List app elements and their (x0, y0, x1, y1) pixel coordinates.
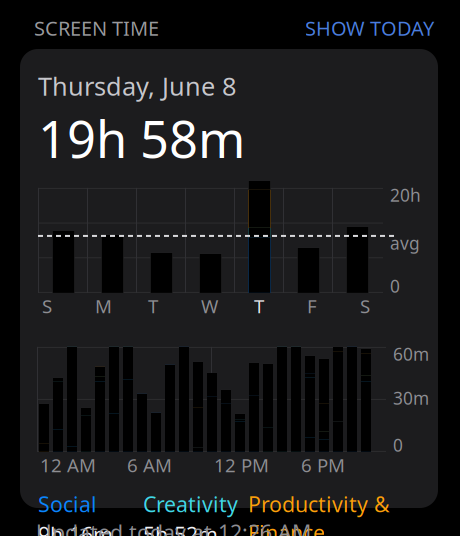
staticText: Social (38, 490, 97, 518)
button[interactable]: SHOW TODAY (305, 15, 434, 41)
staticText: 60m (393, 342, 429, 365)
staticText: S (42, 293, 52, 318)
staticText: Thursday, June 8 (38, 69, 236, 103)
staticText: F (307, 293, 317, 318)
staticText: Creativity (143, 490, 238, 518)
staticText: Productivity & Finance (248, 490, 390, 536)
staticText: S (360, 293, 370, 318)
staticText: T (148, 293, 158, 318)
staticText: 6 PM (301, 452, 345, 477)
staticText: Updated today at 12:26 AM (36, 518, 311, 536)
staticText: T (254, 293, 264, 318)
staticText: 6 AM (127, 452, 172, 477)
button[interactable]: Thursday, June 8 (20, 49, 438, 508)
staticText: SHOW TODAY (305, 15, 434, 41)
staticText: 12 PM (214, 452, 269, 477)
button[interactable]: SCREEN TIME (34, 15, 159, 41)
staticText: 12 AM (40, 452, 96, 477)
staticText: 20h (390, 183, 421, 206)
staticText: M (95, 293, 112, 318)
staticText: 5h 52m (143, 520, 218, 536)
staticText: 19h 58m (38, 105, 245, 172)
staticText: SCREEN TIME (34, 15, 159, 41)
staticText: 0 (393, 433, 403, 456)
staticText: 0 (390, 274, 400, 297)
staticText: 9h 16m (38, 520, 113, 536)
staticText: 30m (393, 386, 429, 409)
staticText: avg (390, 231, 420, 254)
staticText: W (201, 293, 218, 318)
